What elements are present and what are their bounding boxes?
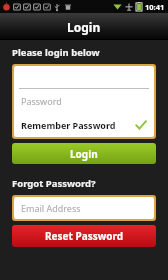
button[interactable]: Reset Password (12, 225, 156, 247)
button[interactable]: Login (12, 143, 156, 164)
staticText: Please login below (12, 46, 100, 59)
button[interactable]: Remember Password (14, 112, 154, 137)
staticText: Password (21, 95, 62, 107)
staticText: Reset Password (45, 229, 124, 243)
button[interactable]: Email Address (14, 197, 154, 219)
other: Remember password checked (135, 119, 147, 131)
staticText: 10:41 (145, 2, 165, 12)
button[interactable] (14, 66, 154, 88)
staticText: Login (70, 147, 98, 161)
button[interactable]: Password (14, 89, 154, 112)
staticText: Login (67, 19, 101, 35)
staticText: Remember Password (21, 119, 116, 131)
staticText: Forgot Password? (12, 177, 96, 190)
staticText: Email Address (21, 202, 81, 214)
